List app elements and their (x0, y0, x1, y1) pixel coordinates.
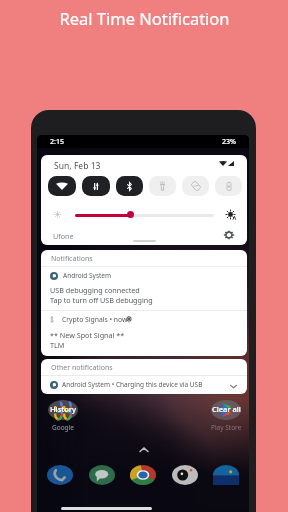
button[interactable]: Battery saver (215, 176, 242, 196)
button[interactable]: Flashlight (149, 176, 176, 196)
button[interactable]: Mobile data (82, 176, 110, 196)
staticText: Other notifications (51, 363, 113, 373)
button[interactable]: Messages (89, 465, 115, 485)
button[interactable]: Camera (172, 465, 198, 485)
staticText: Play Store (211, 423, 242, 432)
staticText: Clear all (212, 404, 241, 414)
button[interactable]: Phone (47, 465, 73, 485)
button[interactable]: Chrome (130, 465, 156, 485)
button[interactable]: Settings (224, 231, 234, 239)
staticText: 2:15 (50, 137, 64, 147)
button[interactable]: Clear all (208, 402, 244, 416)
button[interactable]: Bluetooth (116, 176, 143, 196)
staticText: USB debugging connected (50, 285, 140, 295)
button[interactable]: Google folder (48, 400, 78, 420)
button[interactable]: Auto rotate (182, 176, 209, 196)
staticText: Android System • Charging this device vi… (62, 380, 203, 389)
button[interactable]: History (46, 402, 80, 416)
button[interactable]: Wi-Fi (48, 176, 76, 196)
staticText: History (50, 404, 76, 414)
staticText: Notifications (51, 254, 93, 264)
staticText: Tap to turn off USB debugging (50, 295, 153, 305)
button[interactable]: Auto brightness (226, 210, 236, 220)
staticText: Android System (63, 271, 112, 280)
staticText: Crypto Signals • now (62, 315, 128, 324)
button[interactable]: Open app drawer (139, 446, 149, 453)
staticText: TLM (50, 340, 65, 350)
staticText: Ufone (53, 231, 74, 241)
staticText: 23% (222, 137, 236, 147)
button[interactable]: Expand other notifications (41, 376, 247, 393)
staticText: ** New Spot Signal ** (50, 330, 125, 340)
staticText: Real Time Notification (59, 7, 230, 29)
button[interactable]: Gallery (213, 465, 239, 485)
staticText: Sun, Feb 13 (54, 160, 101, 172)
staticText: Google (52, 423, 74, 432)
button[interactable]: Play Store (211, 400, 241, 420)
